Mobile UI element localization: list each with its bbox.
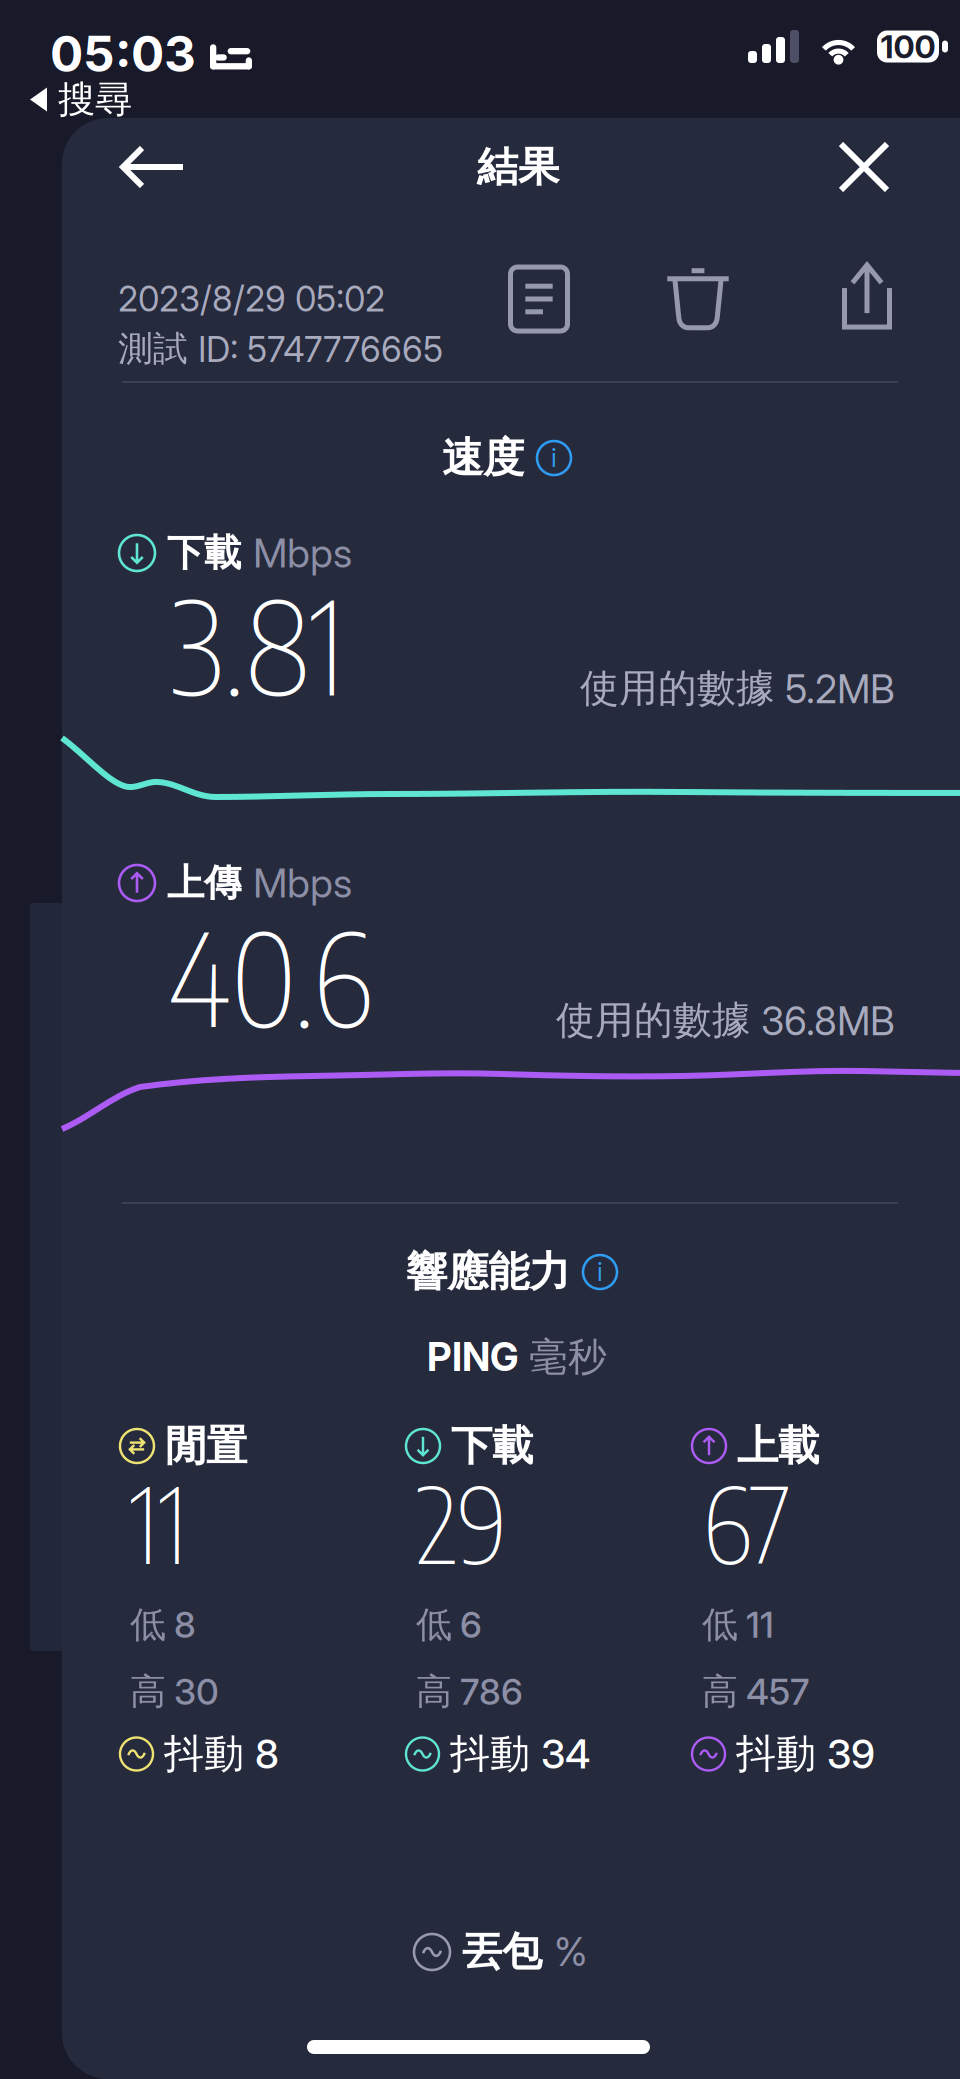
staticText: 8 [255, 1730, 279, 1778]
staticText: i [597, 1257, 603, 1287]
staticText: 6 [460, 1603, 482, 1646]
staticText: 測試 ID: 5747776665 [118, 327, 443, 371]
staticText: 上傳 [167, 859, 241, 906]
staticText: 閒置 [165, 1420, 247, 1472]
button[interactable]: Test details [487, 253, 591, 345]
staticText: 3.81 [170, 565, 345, 723]
staticText: 11 [746, 1603, 774, 1646]
staticText: 使用的數據 5.2MB [580, 664, 895, 713]
staticText: 40.6 [168, 897, 372, 1055]
button[interactable]: Responsiveness info [388, 1234, 635, 1310]
staticText: 05:03 [50, 24, 196, 84]
staticText: 下載 [451, 1420, 533, 1472]
staticText: 100 [880, 27, 935, 66]
staticText: 低 [130, 1602, 166, 1647]
staticText: 抖動 [450, 1729, 530, 1779]
button[interactable]: Speed info [424, 420, 589, 496]
staticText: 使用的數據 36.8MB [556, 996, 895, 1045]
staticText: Mbps [253, 859, 352, 907]
staticText: 30 [174, 1670, 219, 1713]
staticText: 結果 [477, 141, 559, 193]
staticText: 高 [130, 1669, 166, 1714]
staticText: 2023/8/29 05:02 [118, 278, 385, 320]
staticText: 29 [416, 1457, 508, 1587]
staticText: 高 [416, 1669, 452, 1714]
staticText: 丟包 [462, 1927, 542, 1977]
staticText: 高 [702, 1669, 738, 1714]
staticText: 低 [702, 1602, 738, 1647]
staticText: 34 [541, 1730, 590, 1778]
staticText: 響應能力 [406, 1246, 570, 1298]
staticText: PING [427, 1334, 519, 1380]
staticText: 下載 [167, 529, 241, 576]
button[interactable]: Back [93, 119, 213, 215]
staticText: 上載 [737, 1420, 819, 1472]
staticText: % [554, 1929, 588, 1975]
staticText: 抖動 [736, 1729, 816, 1779]
staticText: 8 [174, 1603, 196, 1646]
staticText: 67 [702, 1457, 791, 1587]
button[interactable]: Share result [817, 250, 917, 342]
staticText: 速度 [442, 432, 524, 484]
staticText: 搜尋 [58, 76, 132, 123]
button[interactable]: Delete result [646, 252, 750, 344]
staticText: 786 [460, 1670, 523, 1713]
staticText: 毫秒 [529, 1333, 607, 1381]
staticText: Mbps [253, 529, 352, 577]
staticText: 39 [827, 1730, 875, 1778]
staticText: 抖動 [164, 1729, 244, 1779]
button[interactable]: Close [804, 119, 924, 215]
staticText: 低 [416, 1602, 452, 1647]
staticText: 457 [746, 1670, 809, 1713]
staticText: 11 [130, 1457, 188, 1587]
staticText: i [551, 443, 557, 473]
